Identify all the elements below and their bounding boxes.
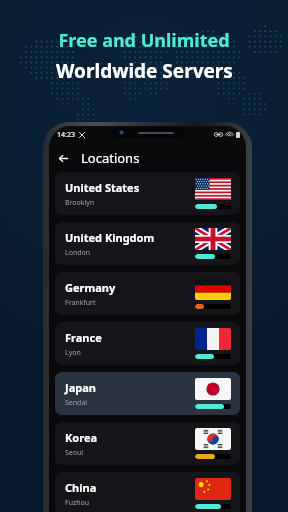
- staticText: Locations: [81, 149, 140, 167]
- staticText: Germany: [65, 280, 116, 295]
- staticText: France: [65, 330, 102, 345]
- button[interactable]: United States: [55, 172, 240, 215]
- staticText: Korea: [65, 430, 98, 445]
- staticText: London: [65, 248, 91, 258]
- staticText: United Kingdom: [65, 230, 155, 245]
- staticText: Free and Unlimited: [58, 28, 230, 53]
- staticText: Japan: [65, 380, 96, 395]
- button[interactable]: Back: [52, 147, 74, 169]
- button[interactable]: France: [55, 322, 240, 365]
- staticText: United States: [65, 180, 140, 195]
- staticText: Lyon: [65, 348, 81, 358]
- staticText: Seoul: [65, 448, 84, 458]
- staticText: 14:23: [57, 130, 75, 140]
- staticText: Fuzhou: [65, 498, 90, 508]
- button[interactable]: China: [55, 472, 240, 512]
- button[interactable]: Korea: [55, 422, 240, 465]
- staticText: Worldwide Servers: [56, 58, 233, 84]
- button[interactable]: Japan: [55, 372, 240, 415]
- staticText: Sendai: [65, 398, 88, 408]
- staticText: Brooklyn: [65, 198, 95, 208]
- button[interactable]: Germany: [55, 272, 240, 315]
- staticText: China: [65, 480, 97, 495]
- staticText: Frankfurt: [65, 298, 96, 308]
- button[interactable]: United Kingdom: [55, 222, 240, 265]
